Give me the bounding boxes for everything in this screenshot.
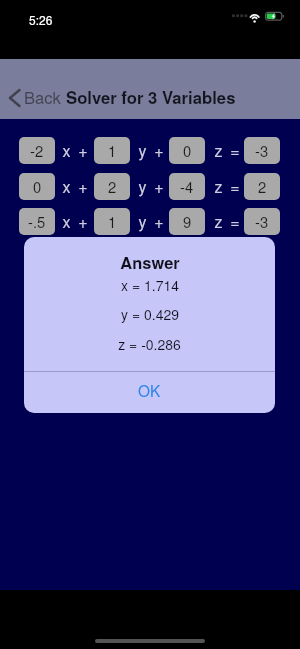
staticText: -3 xyxy=(255,140,269,161)
staticText: + xyxy=(78,139,88,162)
staticText: 2 xyxy=(108,176,117,197)
button[interactable]: 2 xyxy=(94,173,130,200)
staticText: x xyxy=(62,139,71,162)
staticText: + xyxy=(154,210,164,233)
staticText: y xyxy=(138,139,147,162)
staticText: Back xyxy=(24,85,61,109)
staticText: 5:26 xyxy=(29,11,53,28)
staticText: 1 xyxy=(108,140,117,161)
staticText: + xyxy=(154,139,164,162)
staticText: 0 xyxy=(33,176,42,197)
staticText: + xyxy=(154,175,164,198)
button[interactable]: -.5 xyxy=(19,208,55,235)
staticText: x = 1.714 xyxy=(121,275,179,295)
button[interactable]: -2 xyxy=(19,137,55,164)
staticText: 2 xyxy=(258,176,267,197)
staticText: -3 xyxy=(255,211,269,232)
staticText: 1 xyxy=(108,211,117,232)
staticText: -4 xyxy=(180,176,194,197)
staticText: + xyxy=(78,210,88,233)
button[interactable]: 0 xyxy=(169,137,205,164)
staticText: 0 xyxy=(183,140,192,161)
button[interactable]: 1 xyxy=(94,137,130,164)
button[interactable]: -4 xyxy=(169,173,205,200)
staticText: z = -0.286 xyxy=(118,334,181,354)
button[interactable]: -3 xyxy=(244,137,280,164)
staticText: x xyxy=(62,210,71,233)
staticText: z xyxy=(214,175,223,198)
button[interactable]: 2 xyxy=(244,173,280,200)
staticText: Answer xyxy=(120,250,180,274)
button[interactable]: -3 xyxy=(244,208,280,235)
staticText: x xyxy=(62,175,71,198)
staticText: z xyxy=(214,139,223,162)
staticText: = xyxy=(230,175,240,198)
staticText: -.5 xyxy=(28,211,46,232)
staticText: z xyxy=(214,210,223,233)
staticText: 9 xyxy=(183,211,192,232)
staticText: + xyxy=(78,175,88,198)
staticText: y xyxy=(138,210,147,233)
staticText: Solver for 3 Variables xyxy=(66,85,236,109)
button[interactable]: 0 xyxy=(19,173,55,200)
staticText: y xyxy=(138,175,147,198)
button[interactable]: 9 xyxy=(169,208,205,235)
staticText: OK xyxy=(138,379,161,401)
button[interactable]: 1 xyxy=(94,208,130,235)
staticText: y = 0.429 xyxy=(121,304,179,324)
staticText: = xyxy=(230,210,240,233)
staticText: = xyxy=(230,139,240,162)
staticText: -2 xyxy=(30,140,44,161)
button[interactable]: OK xyxy=(24,372,275,413)
button[interactable]: Back xyxy=(4,83,61,113)
